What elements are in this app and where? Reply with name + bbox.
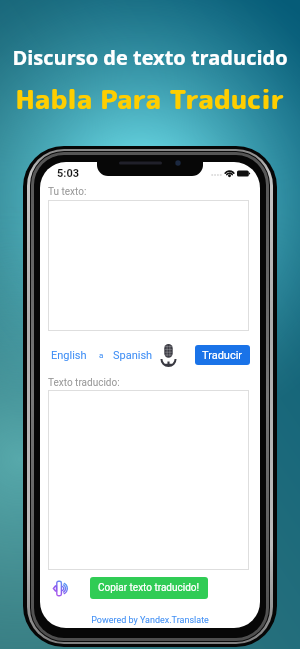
button[interactable]: Escuchar: [50, 580, 67, 597]
staticText: Powered by Yandex.Translate: [91, 615, 209, 626]
staticText: English: [51, 349, 87, 362]
staticText: Discurso de texto traducido: [0, 44, 300, 71]
staticText: Habla Para Traducir: [0, 80, 300, 118]
staticText: Copiar texto traducido!: [98, 582, 200, 594]
staticText: Traducir: [202, 349, 243, 362]
button[interactable]: Spanish: [113, 349, 153, 362]
staticText: Texto traducido:: [48, 377, 120, 389]
staticText: Spanish: [113, 349, 153, 362]
button[interactable]: Hablar: [161, 344, 176, 366]
button[interactable]: Copiar texto traducido!: [90, 577, 208, 599]
button[interactable]: English: [51, 349, 87, 362]
staticText: Tu texto:: [48, 186, 87, 198]
button[interactable]: Powered by Yandex.Translate: [40, 614, 260, 627]
button[interactable]: Traducir: [195, 345, 250, 365]
staticText: 5:03: [57, 167, 80, 180]
staticText: a: [99, 351, 104, 360]
